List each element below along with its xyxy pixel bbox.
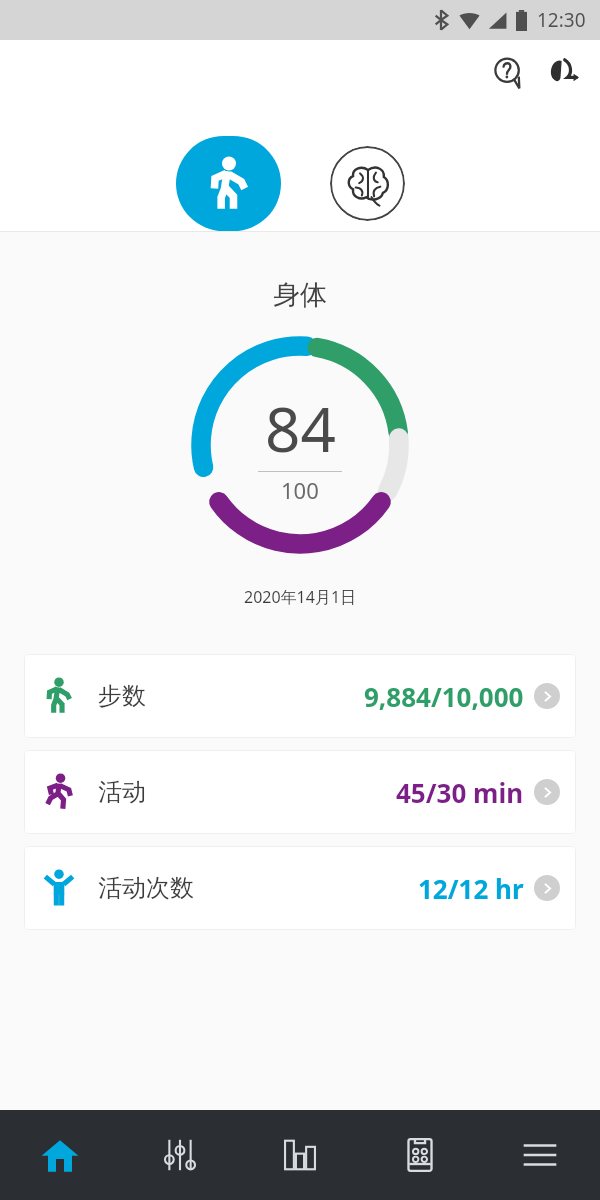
button[interactable]: Remote (360, 1110, 480, 1200)
staticText: 12/12 hr (418, 871, 524, 906)
button[interactable]: 活动次数 (24, 846, 576, 930)
staticText: 活动次数 (98, 873, 194, 903)
staticText: 84 (265, 386, 336, 470)
button[interactable]: Home (0, 1110, 120, 1200)
staticText: 活动 (98, 777, 146, 807)
button[interactable]: Brain (330, 146, 405, 221)
button[interactable]: 活动 (24, 750, 576, 834)
staticText: 12:30 (537, 7, 586, 33)
staticText: 45/30 min (396, 775, 524, 810)
staticText: 9,884/10,000 (364, 679, 524, 714)
staticText: 身体 (273, 278, 327, 312)
button[interactable]: Hearing aid (538, 48, 586, 96)
button[interactable]: Body (176, 136, 281, 231)
staticText: 100 (281, 475, 319, 505)
button[interactable]: 步数 (24, 654, 576, 738)
staticText: 2020年14月1日 (244, 586, 357, 608)
button[interactable]: Help (486, 50, 530, 94)
button[interactable]: Equalizer (120, 1110, 240, 1200)
button[interactable]: Menu (480, 1110, 600, 1200)
button[interactable]: Statistics (240, 1110, 360, 1200)
staticText: 步数 (98, 681, 146, 711)
